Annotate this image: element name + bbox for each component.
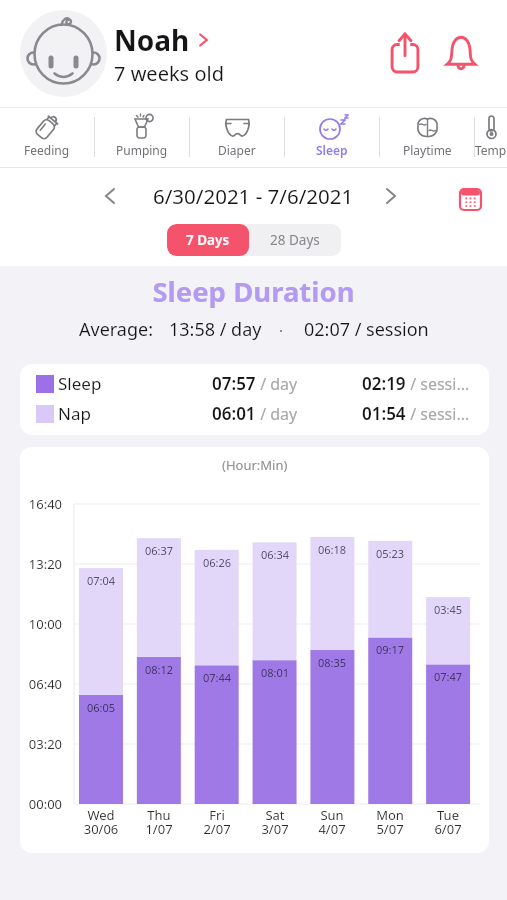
staticText: Temp: [475, 142, 507, 158]
staticText: 06:34: [249, 547, 301, 562]
staticText: Average:: [79, 317, 154, 342]
staticText: / day: [256, 373, 298, 395]
staticText: Sleep: [58, 372, 212, 395]
staticText: 06:37: [133, 543, 185, 558]
staticText: Sleep Duration: [0, 273, 507, 310]
staticText: Diaper: [218, 142, 256, 158]
button[interactable]: [378, 183, 404, 209]
staticText: 02:19: [362, 372, 406, 395]
staticText: 05:23: [364, 546, 416, 561]
staticText: 08:12: [133, 662, 185, 677]
staticText: 7 weeks old: [114, 60, 224, 87]
staticText: / day: [256, 403, 298, 425]
staticText: Playtime: [403, 142, 452, 158]
button[interactable]: Pumping: [95, 108, 189, 167]
button[interactable]: 6/30/2021 - 7/6/2021: [153, 182, 354, 210]
button[interactable]: Diaper: [190, 108, 284, 167]
button[interactable]: Temp: [475, 108, 507, 167]
staticText: (Hour:Min): [222, 456, 288, 474]
staticText: Wed 30/06: [72, 806, 130, 838]
staticText: 07:04: [75, 573, 127, 588]
staticText: 06:18: [306, 542, 358, 557]
staticText: Sleep: [316, 142, 348, 158]
button[interactable]: 7 Days: [167, 224, 249, 256]
staticText: Tue 6/07: [419, 806, 477, 838]
staticText: Thu 1/07: [130, 806, 188, 838]
button[interactable]: [460, 189, 481, 210]
button[interactable]: [383, 32, 427, 76]
button[interactable]: 28 Days: [249, 224, 341, 256]
staticText: ·: [279, 320, 284, 340]
staticText: 13:58 / day: [169, 317, 262, 342]
staticText: 09:17: [364, 642, 416, 657]
staticText: 08:35: [306, 655, 358, 670]
button[interactable]: Noah: [114, 21, 224, 87]
staticText: Fri 2/07: [188, 806, 246, 838]
staticText: 02:07 / session: [304, 317, 429, 342]
staticText: 16:40: [22, 495, 62, 513]
staticText: 07:44: [191, 670, 243, 685]
staticText: 03:45: [422, 602, 474, 617]
button[interactable]: Sleep: [285, 108, 379, 167]
staticText: 03:20: [22, 735, 62, 753]
staticText: / sessi...: [406, 403, 470, 425]
button[interactable]: [97, 183, 123, 209]
staticText: Pumping: [116, 142, 168, 158]
staticText: 06:40: [22, 675, 62, 693]
staticText: Feeding: [24, 142, 70, 158]
staticText: 06:26: [191, 555, 243, 570]
staticText: Nap: [58, 402, 212, 425]
staticText: 28 Days: [270, 231, 320, 249]
staticText: 06:01: [212, 402, 256, 425]
button[interactable]: [439, 32, 483, 76]
staticText: Mon 5/07: [361, 806, 419, 838]
button[interactable]: Playtime: [380, 108, 474, 167]
button[interactable]: Feeding: [0, 108, 94, 167]
staticText: Sat 3/07: [246, 806, 304, 838]
staticText: Noah: [114, 21, 190, 59]
staticText: 07:47: [422, 669, 474, 684]
staticText: 01:54: [362, 402, 406, 425]
staticText: / sessi...: [406, 373, 470, 395]
staticText: 07:57: [212, 372, 256, 395]
staticText: 13:20: [22, 555, 62, 573]
staticText: 10:00: [22, 615, 62, 633]
staticText: 06:05: [75, 700, 127, 715]
staticText: 00:00: [22, 795, 62, 813]
button[interactable]: [20, 10, 107, 97]
staticText: 08:01: [249, 665, 301, 680]
staticText: Sun 4/07: [303, 806, 361, 838]
staticText: 7 Days: [186, 231, 230, 249]
